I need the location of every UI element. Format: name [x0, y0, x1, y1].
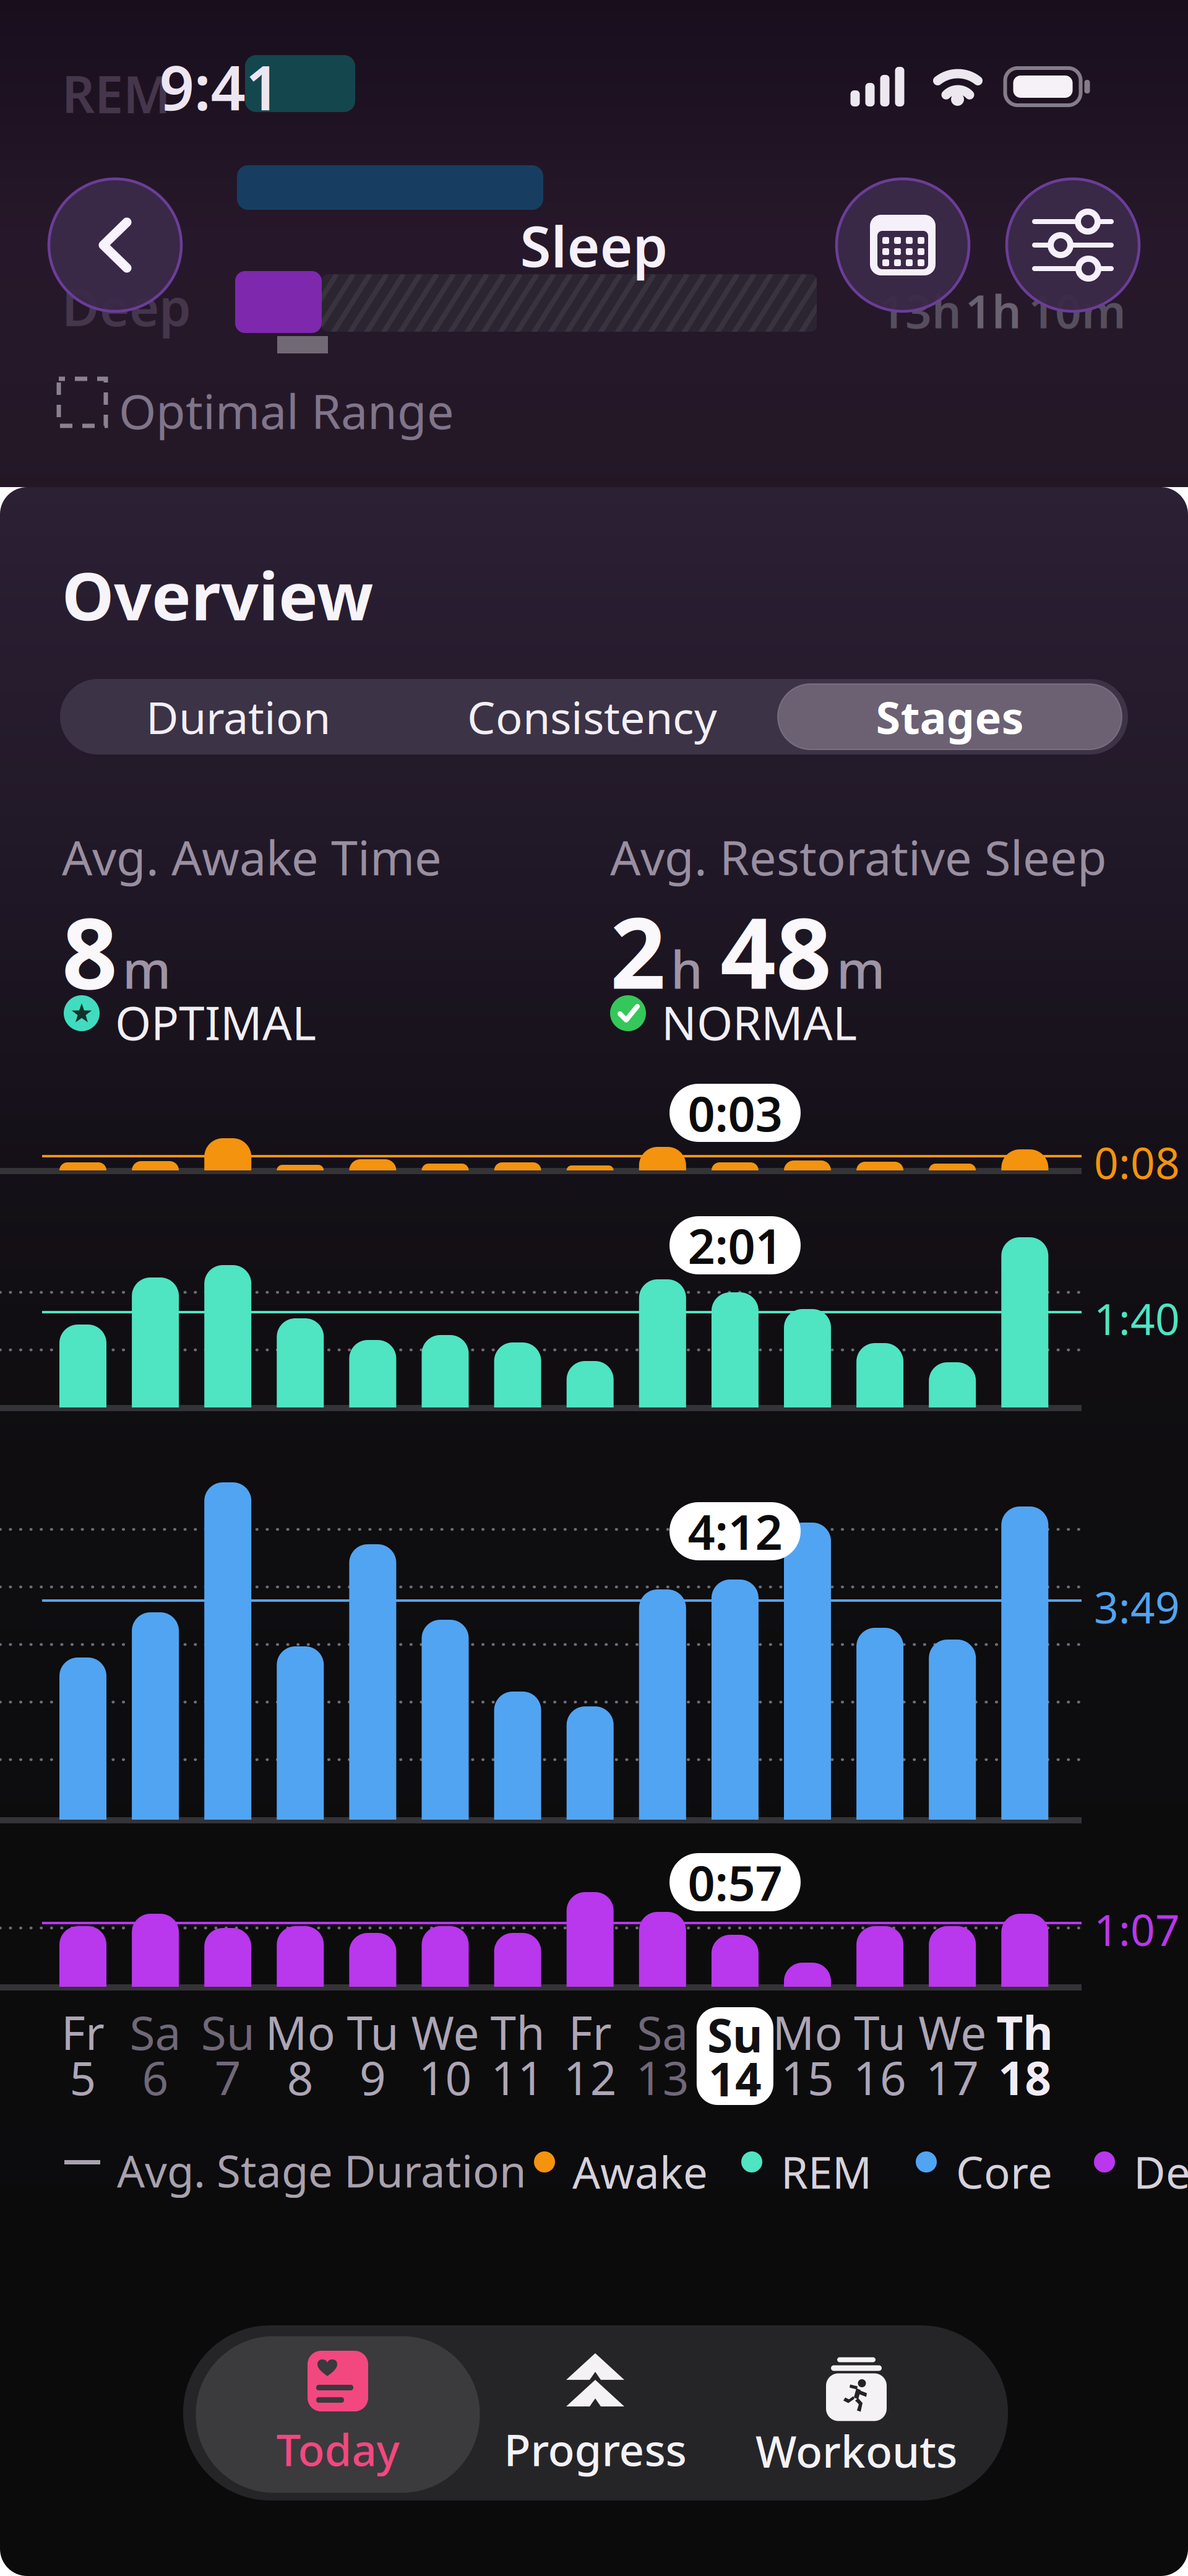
staticText: Fr	[61, 2001, 105, 2063]
button[interactable]: Consistency	[419, 679, 765, 754]
staticText: REM	[62, 59, 171, 127]
staticText: We	[411, 2001, 479, 2063]
button[interactable]: Today	[196, 2336, 480, 2493]
button[interactable]: Progress	[471, 2336, 719, 2493]
staticText: Mo	[773, 2001, 842, 2063]
staticText: 0:08	[1094, 1134, 1180, 1191]
staticText: 14	[708, 2048, 762, 2109]
staticText: We	[918, 2001, 986, 2063]
staticText: Progress	[504, 2420, 687, 2478]
staticText: m	[837, 935, 885, 1003]
staticText: Avg. Awake Time	[62, 825, 442, 889]
staticText: 13	[636, 2046, 689, 2108]
staticText: Today	[276, 2420, 399, 2478]
staticText: 9:41	[159, 46, 280, 127]
button[interactable]: Workouts	[733, 2336, 980, 2493]
staticText: Optimal Range	[119, 379, 454, 442]
staticText: REM	[781, 2143, 872, 2201]
staticText: Duration	[146, 687, 330, 746]
staticText: 1:40	[1094, 1290, 1180, 1347]
staticText: 8	[287, 2046, 314, 2108]
staticText: 12	[563, 2046, 617, 2108]
staticText: Mo	[265, 2001, 335, 2063]
staticText: 15	[781, 2046, 834, 2108]
staticText: Core	[956, 2143, 1052, 2201]
staticText: Awake	[572, 2143, 708, 2201]
staticText: 2	[610, 886, 666, 1016]
staticText: NORMAL	[661, 992, 857, 1053]
staticText: Consistency	[467, 687, 717, 746]
staticText: 1:07	[1094, 1901, 1180, 1958]
staticText: 5	[70, 2046, 96, 2108]
staticText: Th	[996, 2001, 1053, 2063]
staticText: 0:57	[688, 1850, 782, 1914]
staticText: 1h	[965, 280, 1022, 341]
staticText: 16	[853, 2046, 907, 2108]
staticText: 9	[359, 2046, 386, 2108]
staticText: 13h	[879, 280, 962, 341]
staticText: Sleep	[520, 208, 668, 282]
staticText: Th	[490, 2001, 545, 2063]
staticText: 48	[720, 886, 832, 1016]
staticText: Stages	[876, 687, 1024, 746]
staticText: Workouts	[755, 2422, 957, 2480]
staticText: 7	[215, 2046, 241, 2108]
staticText: Su	[707, 2004, 763, 2065]
staticText: Su	[201, 2001, 255, 2063]
staticText: Sa	[637, 2001, 688, 2063]
staticText: 11	[491, 2046, 544, 2108]
button[interactable]	[837, 179, 969, 311]
staticText: 10	[419, 2046, 472, 2108]
staticText: 10m	[1028, 280, 1126, 341]
staticText: Tu	[347, 2001, 399, 2063]
staticText: Avg. Restorative Sleep	[610, 825, 1107, 889]
staticText: Tu	[854, 2001, 906, 2063]
staticText: 0:03	[688, 1081, 782, 1145]
staticText: 17	[926, 2046, 979, 2108]
staticText: OPTIMAL	[115, 992, 316, 1053]
button[interactable]: Duration	[65, 679, 411, 754]
staticText: 2:01	[688, 1214, 782, 1277]
staticText: Avg. Stage Duration	[117, 2142, 527, 2200]
button[interactable]: Stages	[778, 684, 1122, 750]
staticText: 6	[142, 2046, 169, 2108]
staticText: Sa	[130, 2001, 181, 2063]
staticText: Overview	[62, 551, 373, 638]
staticText: 8	[62, 886, 118, 1016]
button[interactable]	[1007, 179, 1139, 311]
staticText: 4:12	[688, 1499, 782, 1563]
staticText: Fr	[568, 2001, 612, 2063]
staticText: 18	[998, 2046, 1051, 2108]
staticText: Dee	[1134, 2143, 1188, 2201]
staticText: m	[123, 935, 171, 1003]
staticText: h	[671, 935, 703, 1003]
button[interactable]: Su	[697, 2007, 773, 2105]
staticText: Deep	[62, 272, 191, 340]
button[interactable]	[49, 179, 181, 311]
staticText: 3:49	[1094, 1578, 1180, 1635]
